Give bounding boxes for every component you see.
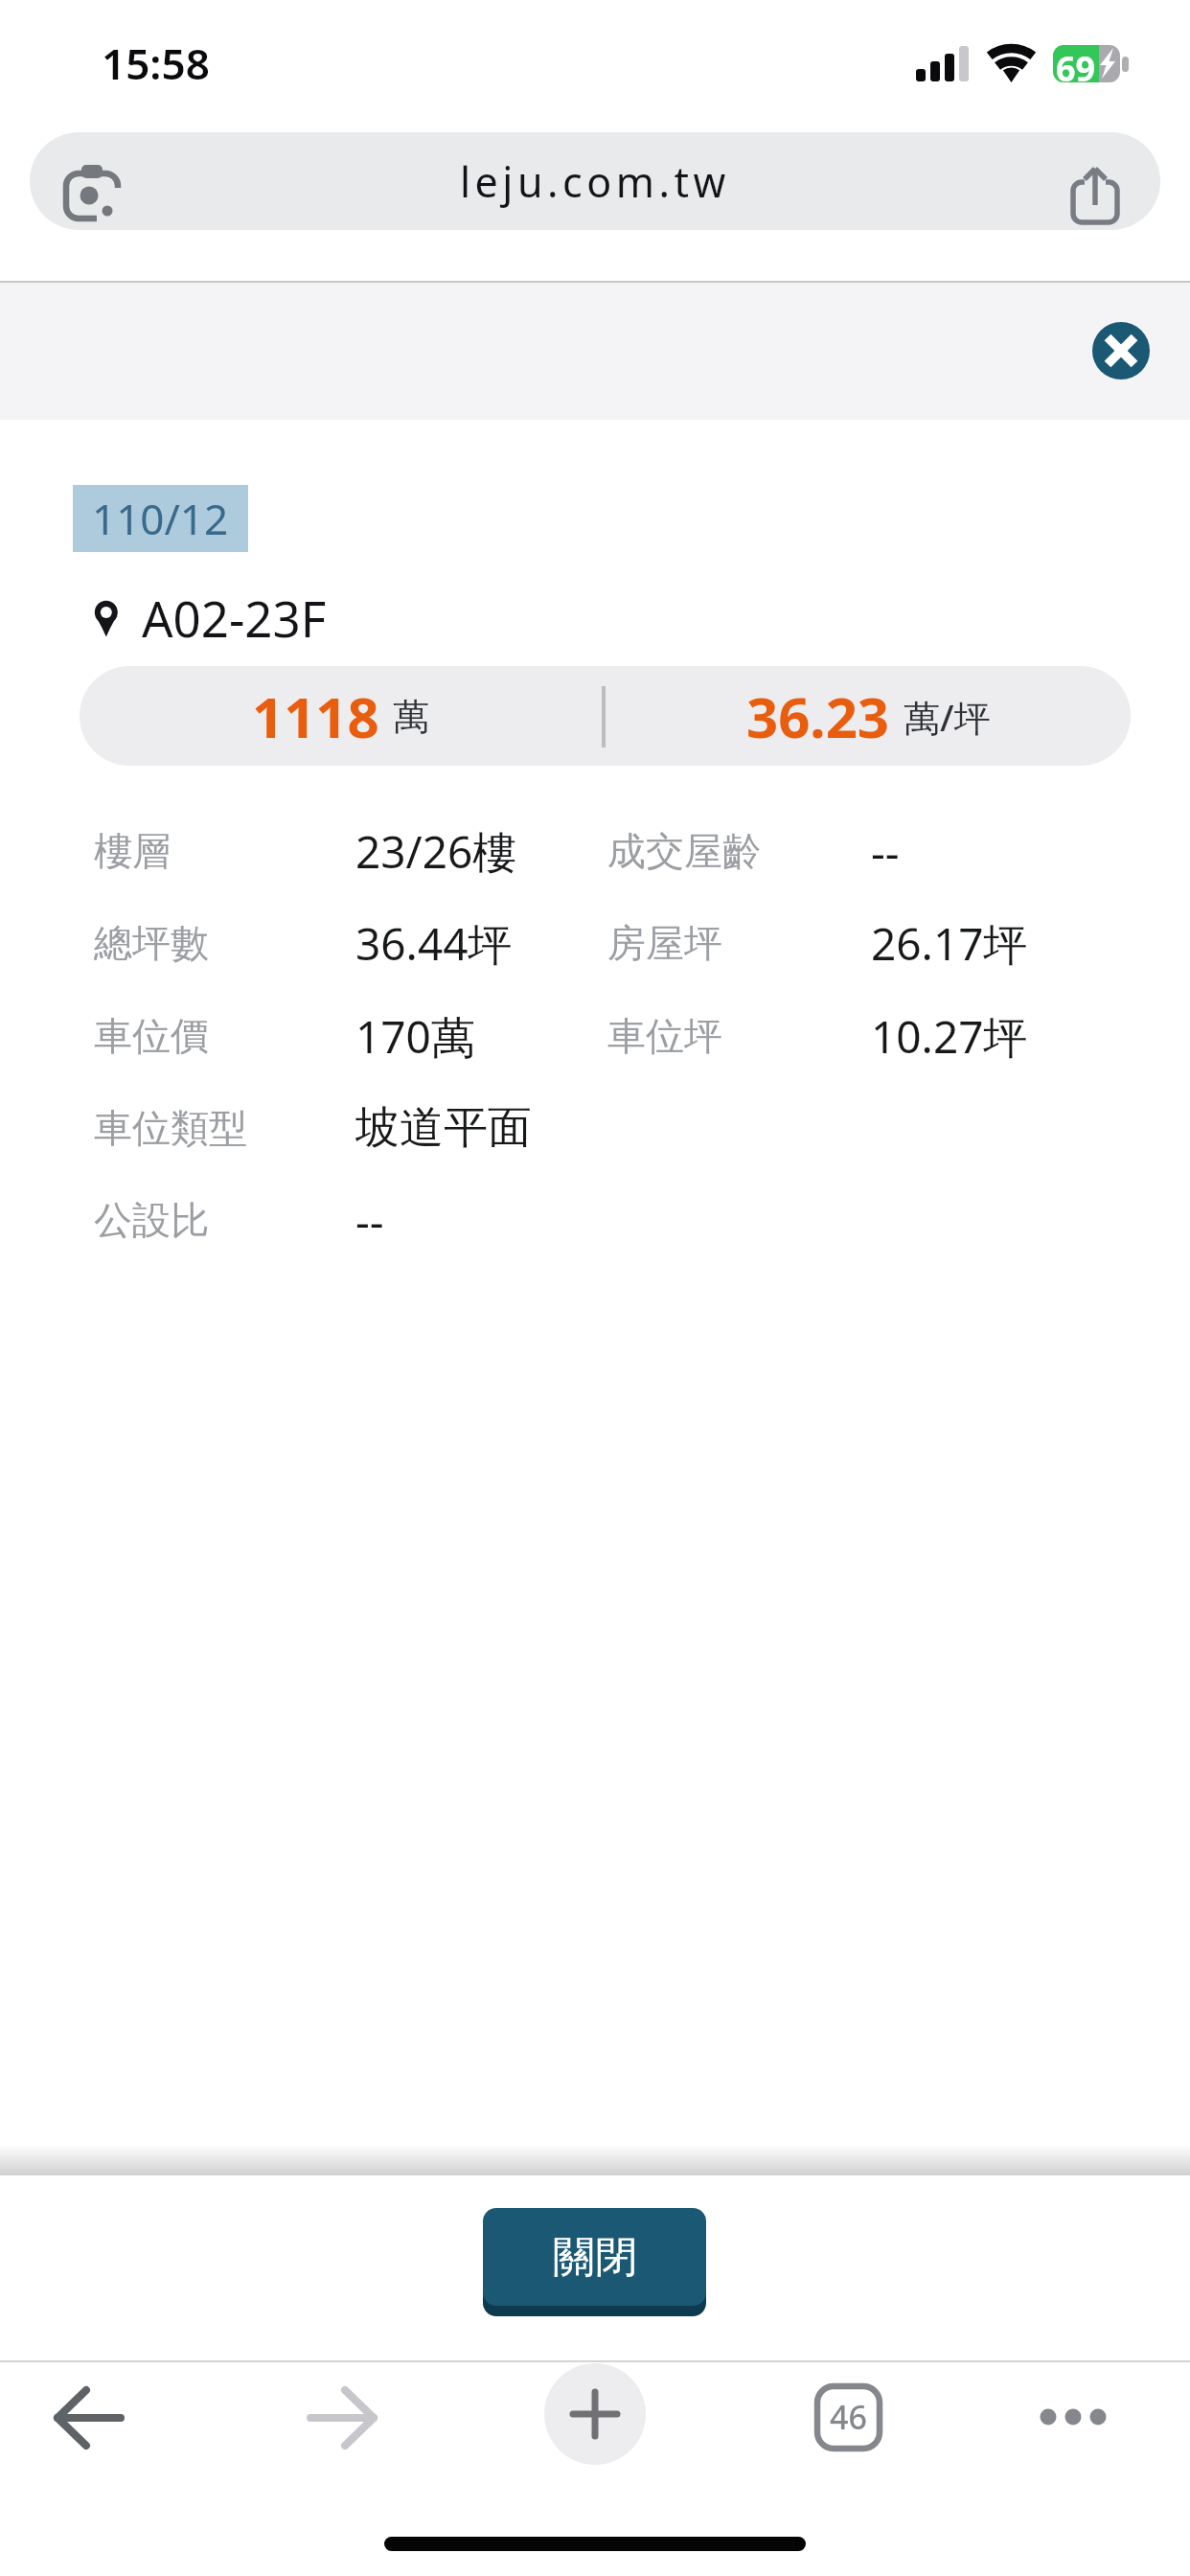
button[interactable] — [307, 2380, 383, 2456]
staticText: 46 — [830, 2395, 867, 2439]
staticText: 總坪數 — [94, 919, 209, 967]
staticText: 26.17坪 — [871, 913, 1028, 974]
staticText: 36.23 — [746, 678, 890, 754]
staticText: 車位價 — [94, 1012, 209, 1060]
staticText: 成交屋齡 — [607, 827, 761, 875]
staticText: -- — [355, 1190, 384, 1251]
staticText: 房屋坪 — [607, 919, 722, 967]
staticText: 坡道平面 — [355, 1100, 532, 1156]
staticText: -- — [871, 821, 900, 882]
button[interactable]: 關閉 — [483, 2208, 706, 2306]
staticText: 69 — [1056, 45, 1096, 82]
staticText: 110/12 — [92, 490, 229, 547]
staticText: 車位類型 — [94, 1104, 247, 1152]
staticText: 170萬 — [355, 1006, 475, 1067]
button[interactable] — [50, 2380, 126, 2456]
button[interactable] — [1035, 2380, 1111, 2456]
staticText: 萬/坪 — [904, 692, 991, 742]
staticText: 23/26樓 — [355, 821, 517, 882]
staticText: 樓層 — [94, 827, 171, 875]
button[interactable]: 46 — [810, 2379, 886, 2455]
staticText: 萬 — [393, 694, 429, 740]
button[interactable] — [1092, 322, 1150, 379]
staticText: 關閉 — [553, 2231, 637, 2284]
staticText: leju.com.tw — [460, 153, 730, 210]
button[interactable] — [544, 2363, 646, 2465]
staticText: 車位坪 — [607, 1012, 722, 1060]
staticText: A02-23F — [142, 585, 327, 650]
staticText: 15:58 — [102, 34, 210, 88]
staticText: 公設比 — [94, 1196, 209, 1244]
staticText: 1118 — [252, 678, 379, 754]
staticText: 10.27坪 — [871, 1006, 1028, 1067]
staticText: 36.44坪 — [355, 913, 513, 974]
button[interactable]: leju.com.tw — [30, 132, 1160, 230]
